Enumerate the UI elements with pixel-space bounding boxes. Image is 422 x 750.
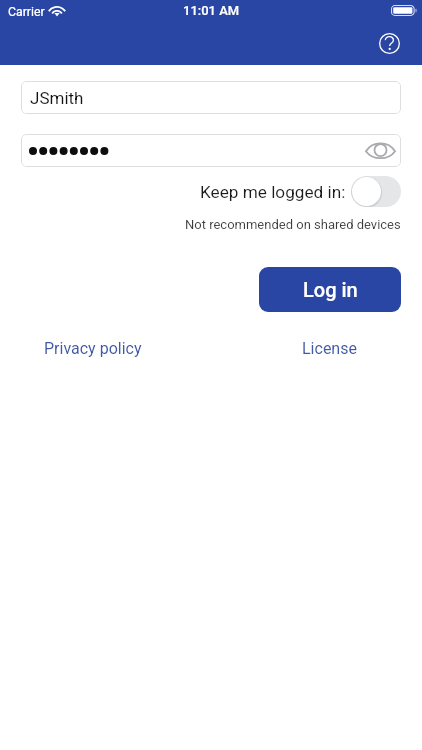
staticText: Keep me logged in: xyxy=(200,182,346,202)
button[interactable]: Show password xyxy=(21,134,401,167)
button[interactable]: Log in xyxy=(259,267,401,312)
button[interactable]: License xyxy=(302,339,357,358)
button[interactable]: Keep me logged in xyxy=(351,176,401,207)
button[interactable]: Keep me logged in: xyxy=(200,176,401,207)
staticText: Log in xyxy=(303,278,358,301)
staticText: Carrier xyxy=(8,5,45,19)
staticText: License xyxy=(302,339,357,358)
staticText: 11:01 AM xyxy=(183,3,240,18)
staticText: Not recommended on shared devices xyxy=(185,217,401,232)
button[interactable]: Help xyxy=(376,30,403,57)
button[interactable]: Show password xyxy=(363,135,397,166)
staticText: Privacy policy xyxy=(44,339,142,358)
staticText: JSmith xyxy=(30,88,84,108)
button[interactable]: Privacy policy xyxy=(44,339,142,358)
button[interactable]: JSmith xyxy=(21,81,401,114)
